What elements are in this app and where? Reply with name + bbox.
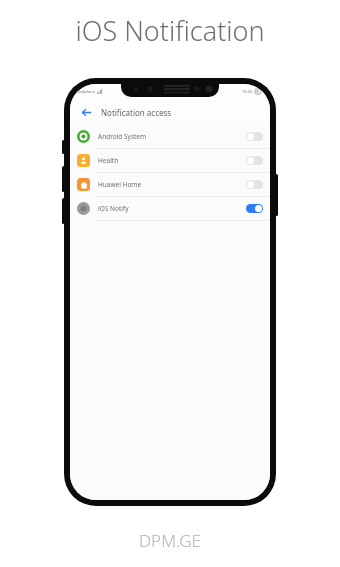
staticText: Health xyxy=(98,156,246,165)
staticText: Huawei Home xyxy=(98,180,246,189)
staticText: DPM.GE xyxy=(139,529,201,552)
button[interactable]: Android System xyxy=(70,125,270,148)
staticText: Vodafone xyxy=(77,89,95,94)
staticText: iOS Notification xyxy=(75,12,265,49)
staticText: iOS Notify xyxy=(98,204,246,213)
button[interactable]: Back xyxy=(76,102,96,122)
button[interactable]: Toggle off xyxy=(246,180,263,189)
staticText: Notification access xyxy=(101,107,172,118)
staticText: 13:26 xyxy=(242,89,253,94)
button[interactable]: Toggle off xyxy=(246,156,263,165)
staticText: Android System xyxy=(98,132,246,141)
button[interactable]: Toggle off xyxy=(246,132,263,141)
button[interactable]: Huawei Home xyxy=(70,173,270,196)
button[interactable]: Health xyxy=(70,149,270,172)
button[interactable]: Toggle on xyxy=(246,204,263,213)
button[interactable]: iOS Notify xyxy=(70,197,270,220)
